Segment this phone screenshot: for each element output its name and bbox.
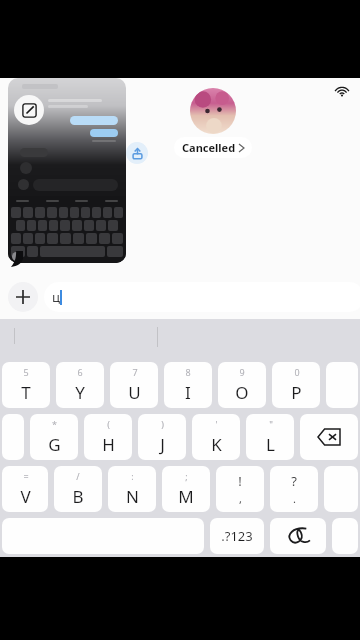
staticText: / xyxy=(76,470,80,482)
staticText: N xyxy=(126,485,139,508)
staticText: 8 xyxy=(185,366,191,378)
button[interactable]: = xyxy=(2,466,48,512)
button[interactable]: ' xyxy=(192,414,240,460)
staticText: 9 xyxy=(239,366,245,378)
staticText: * xyxy=(52,418,57,430)
button[interactable]: 6 xyxy=(56,362,104,408)
staticText: " xyxy=(269,418,273,430)
button[interactable]: ? xyxy=(270,466,318,512)
button[interactable]: 8 xyxy=(164,362,212,408)
button[interactable] xyxy=(324,466,358,512)
staticText: 0 xyxy=(294,366,300,378)
staticText: G xyxy=(48,433,61,456)
staticText: 5 xyxy=(23,366,29,378)
staticText: M xyxy=(178,485,194,508)
staticText: ? xyxy=(291,472,297,490)
staticText: 7 xyxy=(132,366,138,378)
staticText: = xyxy=(23,470,29,482)
button[interactable]: : xyxy=(108,466,156,512)
staticText: ( xyxy=(107,418,110,430)
button[interactable]: ) xyxy=(138,414,186,460)
button[interactable]: / xyxy=(54,466,102,512)
staticText: U xyxy=(128,381,141,404)
staticText: B xyxy=(72,485,84,508)
staticText: , xyxy=(239,491,242,506)
button[interactable]: ( xyxy=(84,414,132,460)
button[interactable]: 5 xyxy=(2,362,50,408)
staticText: . xyxy=(293,491,296,506)
button[interactable]: 0 xyxy=(272,362,320,408)
button[interactable] xyxy=(8,78,126,263)
button[interactable]: 9 xyxy=(218,362,266,408)
button[interactable]: Profile photo xyxy=(190,88,236,134)
button[interactable] xyxy=(300,414,358,460)
button[interactable]: .?123 xyxy=(210,518,264,554)
staticText: Y xyxy=(75,381,85,404)
staticText: J xyxy=(160,433,165,456)
button[interactable] xyxy=(2,414,24,460)
button[interactable]: Share xyxy=(126,142,148,164)
staticText: P xyxy=(291,381,302,404)
button[interactable]: ц xyxy=(44,282,360,312)
staticText: Cancelled xyxy=(182,140,236,155)
staticText: ; xyxy=(185,470,188,482)
staticText: ) xyxy=(161,418,164,430)
button[interactable]: Cancelled xyxy=(174,137,252,158)
staticText: : xyxy=(131,470,134,482)
staticText: .?123 xyxy=(221,527,253,545)
button[interactable] xyxy=(326,362,358,408)
staticText: O xyxy=(235,381,249,404)
button[interactable]: Add attachment xyxy=(8,282,38,312)
button[interactable]: Compose message xyxy=(14,95,44,125)
button[interactable]: 7 xyxy=(110,362,158,408)
staticText: T xyxy=(21,381,31,404)
button[interactable] xyxy=(270,518,326,554)
button[interactable]: ; xyxy=(162,466,210,512)
button[interactable]: * xyxy=(30,414,78,460)
staticText: L xyxy=(266,433,275,456)
button[interactable]: " xyxy=(246,414,294,460)
staticText: V xyxy=(20,485,31,508)
staticText: H xyxy=(102,433,115,456)
button[interactable] xyxy=(332,518,358,554)
staticText: ц xyxy=(52,288,60,306)
staticText: ' xyxy=(215,418,218,430)
button[interactable]: ! xyxy=(216,466,264,512)
other: Wi-Fi xyxy=(333,82,351,100)
staticText: 6 xyxy=(77,366,83,378)
staticText: ! xyxy=(238,472,242,490)
staticText: I xyxy=(185,381,191,404)
staticText: K xyxy=(211,433,222,456)
